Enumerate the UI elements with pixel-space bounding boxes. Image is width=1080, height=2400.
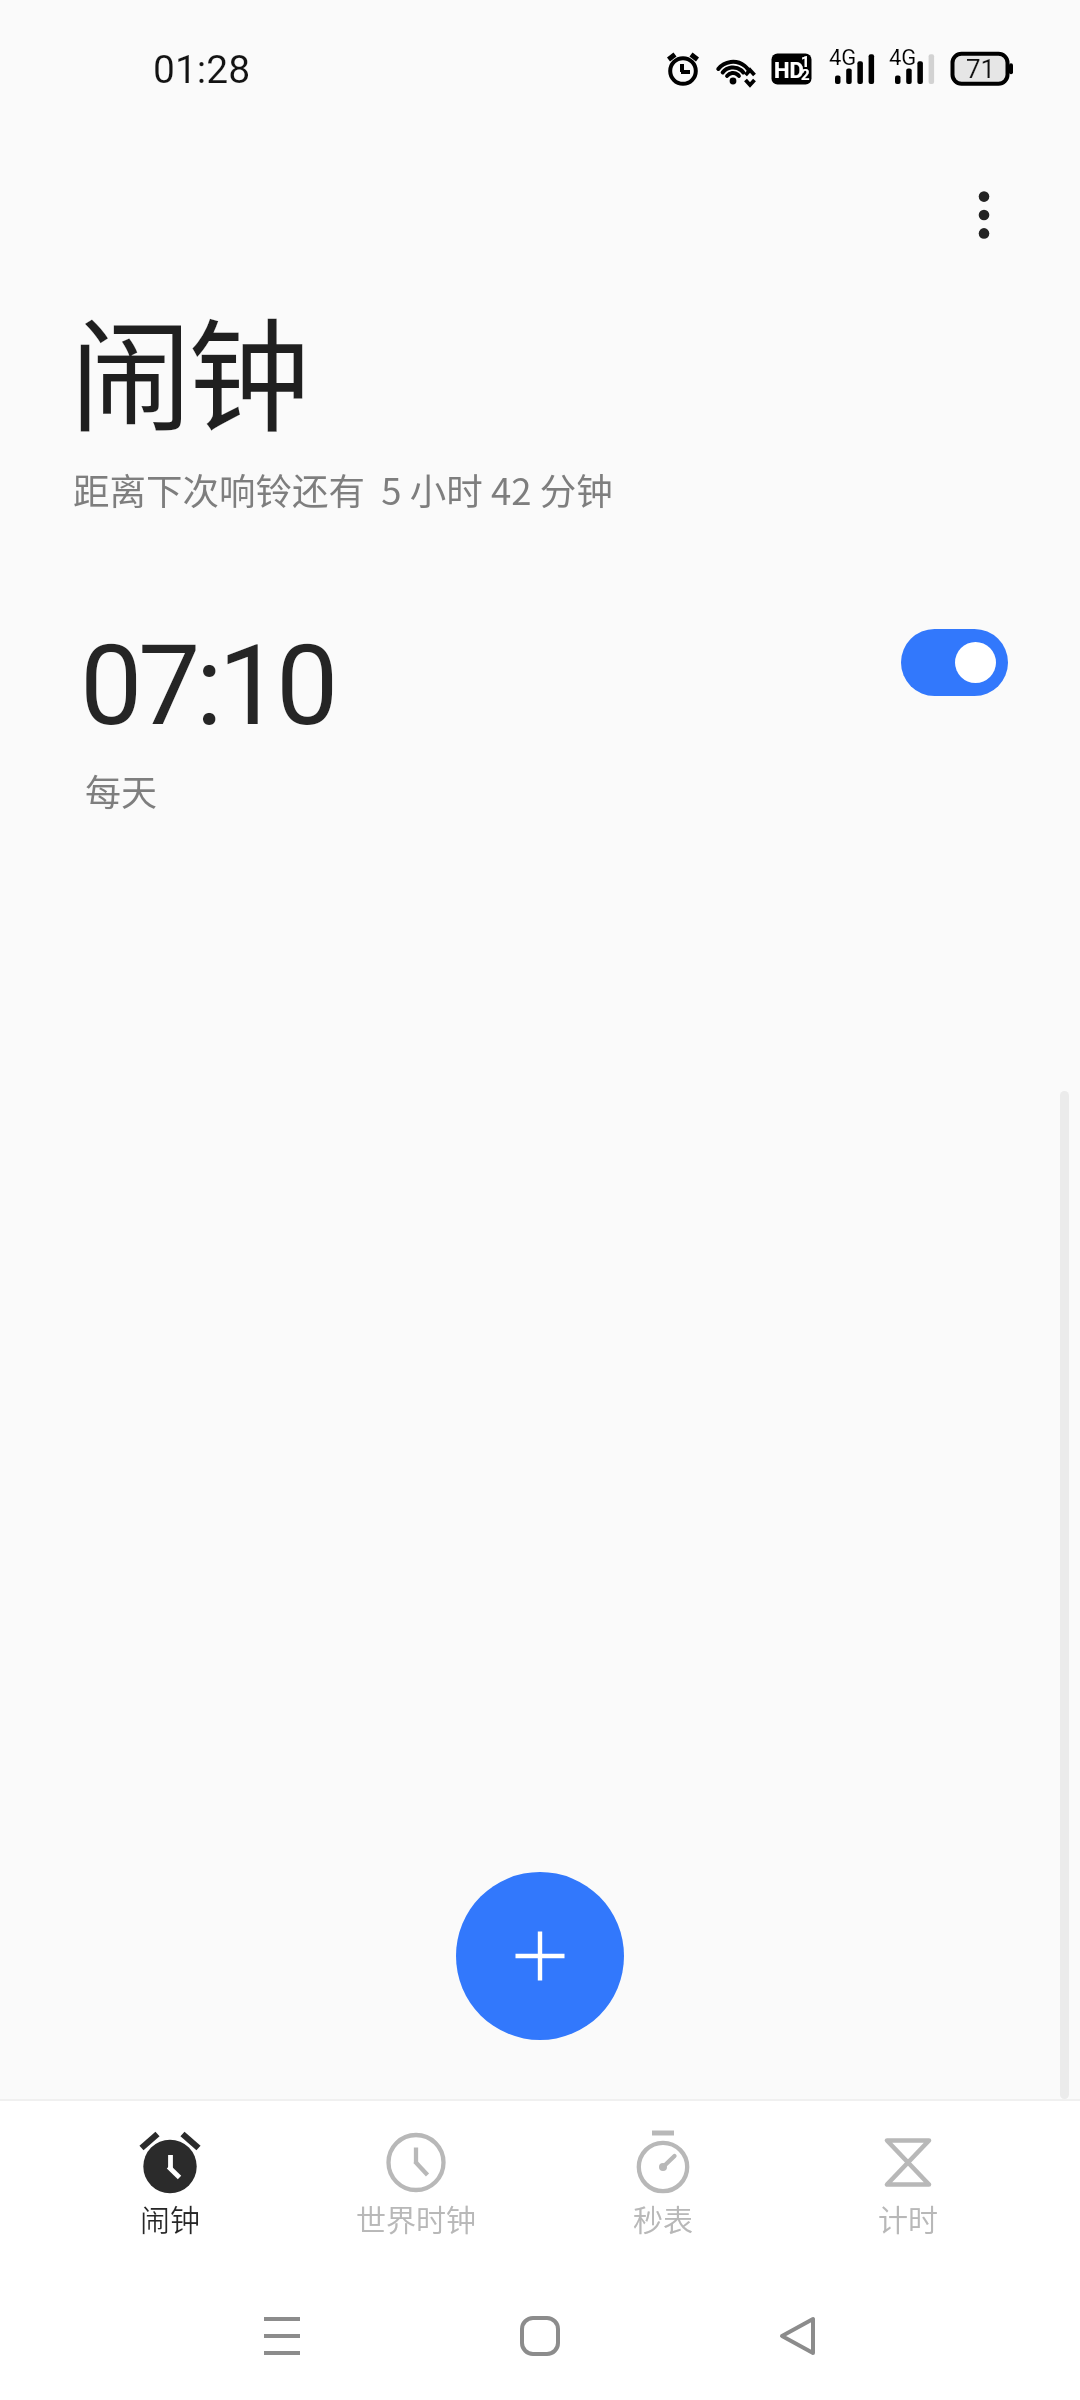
staticText: 01:28: [153, 47, 251, 93]
button[interactable]: 世界时钟: [306, 2101, 526, 2261]
staticText: 每天: [85, 764, 158, 816]
staticText: 71: [966, 54, 996, 84]
staticText: 4G: [889, 45, 917, 71]
button[interactable]: Add alarm: [456, 1872, 624, 2040]
button[interactable]: Recent apps: [222, 2276, 342, 2396]
button[interactable]: 计时: [798, 2101, 1018, 2261]
staticText: 2: [801, 66, 810, 84]
button[interactable]: 07:10: [0, 596, 1080, 836]
staticText: 4G: [829, 45, 857, 71]
button[interactable]: 闹钟: [60, 2101, 280, 2261]
staticText: 闹钟: [70, 279, 306, 456]
button[interactable]: More options: [934, 165, 1034, 265]
staticText: 07:10: [80, 621, 334, 751]
button[interactable]: Alarm on/off toggle: [901, 629, 1008, 696]
staticText: 计时: [878, 2196, 938, 2239]
button[interactable]: Home: [480, 2276, 600, 2396]
staticText: 秒表: [633, 2196, 693, 2239]
staticText: HD: [774, 58, 804, 84]
staticText: 1: [801, 53, 810, 71]
staticText: 闹钟: [140, 2196, 200, 2239]
staticText: 世界时钟: [356, 2196, 476, 2239]
staticText: 距离下次响铃还有 5 小时 42 分钟: [73, 463, 613, 516]
button[interactable]: Back: [738, 2276, 858, 2396]
button[interactable]: 秒表: [553, 2101, 773, 2261]
